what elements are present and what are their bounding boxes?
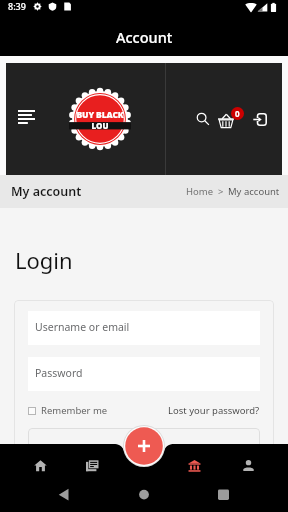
staticText: My account [11,183,82,200]
staticText: LOU [55,120,145,131]
staticText: Log in [128,436,160,451]
button[interactable]: Lost your password? [168,404,260,417]
button[interactable]: Home [18,444,62,484]
button[interactable]: News [70,444,114,484]
staticText: My account [228,185,280,198]
staticText: Password [35,366,83,380]
button[interactable]: Cart [216,105,246,133]
button[interactable]: Directory [172,444,216,484]
staticText: 0 [235,108,240,119]
button[interactable]: Account [226,444,270,484]
staticText: Remember me [41,404,108,417]
staticText: 8:39 [8,0,26,12]
staticText: > [218,185,224,198]
button[interactable]: Home [186,185,214,198]
button[interactable]: Add [123,425,165,467]
staticText: Login [15,245,73,275]
button[interactable]: Remember me [28,404,108,417]
button[interactable]: Login [247,106,273,132]
staticText: BUY BLACK [55,109,145,121]
staticText: Account [116,27,173,47]
staticText: Username or email [35,320,130,334]
button[interactable]: Search [190,106,216,132]
button[interactable]: Menu [12,105,40,133]
button[interactable]: Log in [28,428,260,458]
